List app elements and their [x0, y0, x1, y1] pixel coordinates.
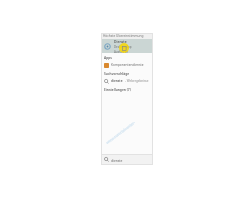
staticText: Höchste Übereinstimmung: [103, 34, 144, 38]
staticText: Dienste: [114, 39, 127, 44]
staticText: dienste: [111, 158, 123, 162]
button[interactable]: dienste: [101, 154, 153, 165]
other: Highlight: [119, 43, 129, 53]
staticText: Komponentendienste: [111, 63, 144, 67]
staticText: Desktop-App: [114, 45, 132, 49]
staticText: - Webergebnisse anzeigen: [125, 79, 153, 83]
staticText: Ausführen: [114, 50, 129, 53]
staticText: dienste: [111, 79, 123, 83]
staticText: www.tutorialcenter-schulungs.de: [105, 110, 149, 145]
staticText: Apps: [104, 55, 112, 59]
staticText: Einstellungen (7): [104, 87, 131, 91]
staticText: Suchvorschläge: [104, 71, 130, 75]
button[interactable]: Dienste: [101, 39, 153, 53]
button[interactable]: Komponentendienste: [101, 61, 153, 69]
button[interactable]: dienste: [101, 77, 153, 85]
